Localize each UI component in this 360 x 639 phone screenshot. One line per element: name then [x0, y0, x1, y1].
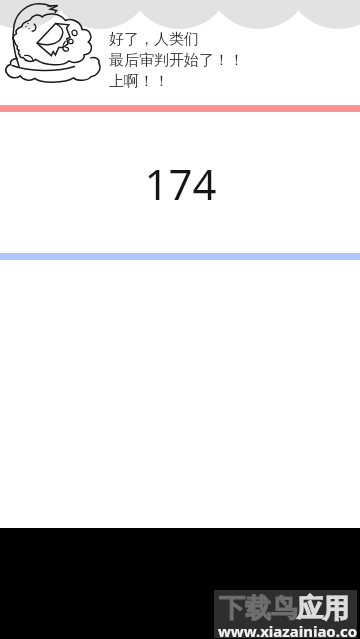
staticText: 应用 [297, 592, 349, 625]
staticText: 好了，人类们 [109, 30, 199, 51]
staticText: 下载鸟 [219, 592, 297, 625]
staticText: 174 [144, 155, 217, 205]
staticText: 最后审判开始了！！ [109, 51, 244, 72]
staticText: 上啊！！ [109, 72, 169, 93]
staticText: www.xiazainiao.com [218, 621, 360, 639]
